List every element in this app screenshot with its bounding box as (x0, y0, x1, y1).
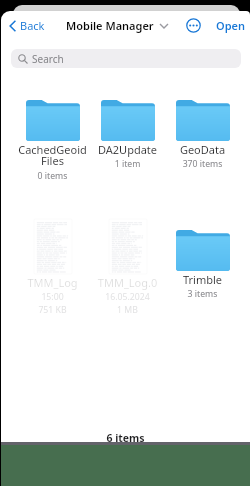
staticText: DA2Update (90, 142, 165, 157)
staticText: Trimble (165, 272, 240, 287)
staticText: 1 item (90, 158, 165, 170)
button[interactable]: TMM_Log (15, 219, 90, 315)
staticText: Mobile Manager (66, 18, 154, 33)
staticText: Search (32, 52, 64, 66)
staticText: 6 items (1, 431, 250, 445)
staticText: 370 items (165, 158, 240, 170)
staticText: 3 items (165, 288, 240, 300)
button[interactable]: DA2Update (90, 100, 165, 170)
button[interactable]: Search (11, 49, 241, 68)
staticText: 16.05.2024 1 MB (90, 291, 165, 315)
staticText: GeoData (165, 142, 240, 157)
button[interactable]: More options (186, 18, 201, 33)
button[interactable]: CachedGeoid Files (15, 100, 90, 182)
staticText: CachedGeoid Files (15, 142, 90, 169)
staticText: Back (20, 18, 45, 33)
button[interactable]: Mobile Manager (66, 18, 168, 33)
staticText: 15:00 751 KB (15, 291, 90, 315)
button[interactable]: Trimble (165, 219, 240, 300)
button[interactable]: Open (216, 18, 245, 33)
staticText: 0 items (15, 170, 90, 182)
staticText: TMM_Log (15, 275, 90, 290)
button[interactable]: Back (9, 18, 45, 33)
button[interactable]: TMM_Log.0 (90, 219, 165, 315)
button[interactable]: GeoData (165, 100, 240, 170)
staticText: TMM_Log.0 (90, 275, 165, 290)
